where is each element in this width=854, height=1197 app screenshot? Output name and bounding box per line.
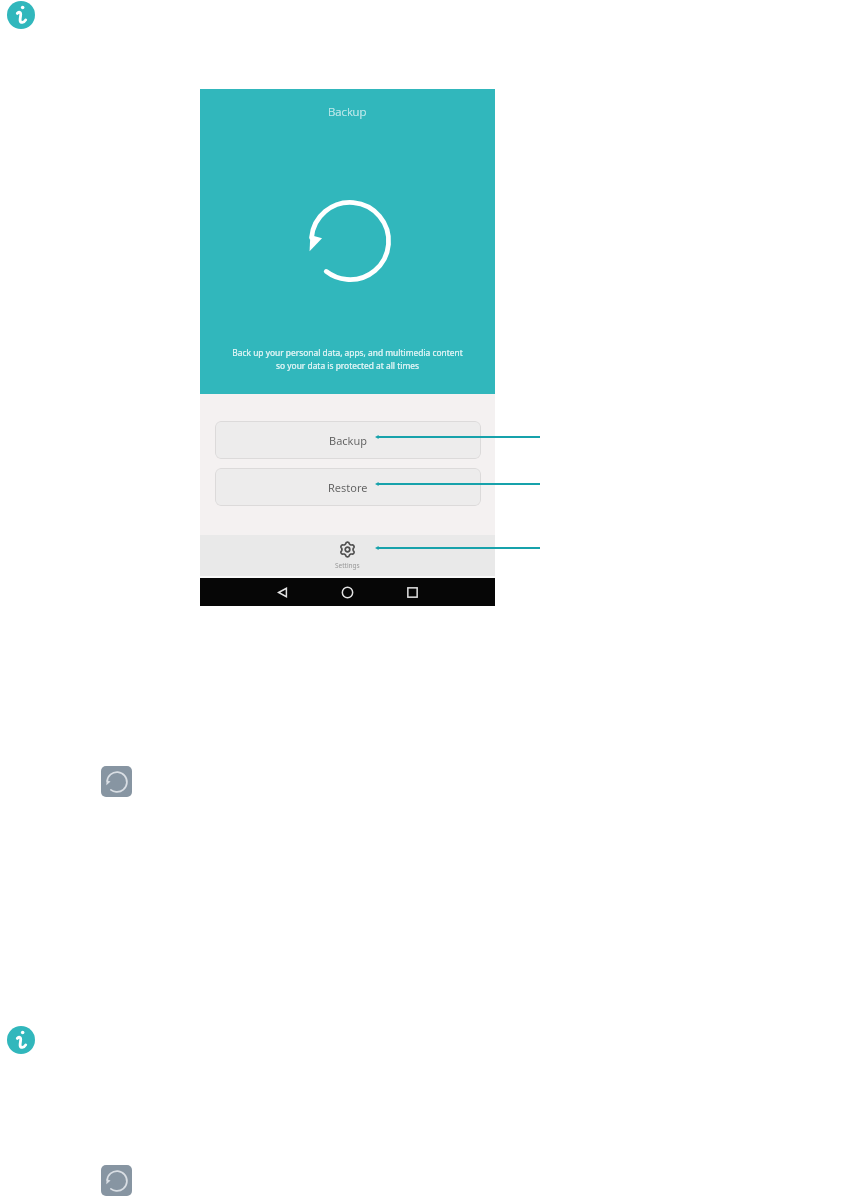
other: Backup app bbox=[101, 766, 132, 797]
button[interactable]: Restore bbox=[215, 468, 481, 506]
other: Callout bbox=[375, 542, 540, 554]
staticText: Settings bbox=[335, 561, 360, 570]
staticText: Backup bbox=[328, 104, 367, 120]
staticText: Restore bbox=[328, 480, 368, 495]
button[interactable]: Settings bbox=[200, 535, 495, 576]
button[interactable]: Backup bbox=[215, 421, 481, 459]
other: Backup app bbox=[101, 1165, 132, 1196]
button[interactable]: Home bbox=[340, 585, 355, 600]
button[interactable]: Back bbox=[275, 585, 290, 600]
other: Callout bbox=[375, 431, 540, 443]
button[interactable]: Info note bbox=[7, 1, 35, 29]
staticText: Backup bbox=[329, 433, 368, 448]
button[interactable]: Info note bbox=[7, 1026, 35, 1054]
other: Callout bbox=[375, 478, 540, 490]
button[interactable]: Recent apps bbox=[405, 585, 420, 600]
other: Settings bbox=[339, 541, 356, 558]
staticText: Back up your personal data, apps, and mu… bbox=[232, 347, 463, 371]
